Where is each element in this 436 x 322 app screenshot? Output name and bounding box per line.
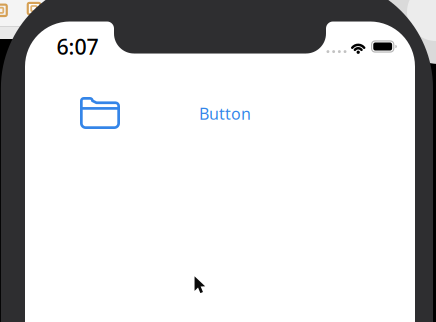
staticText: 6:07	[56, 32, 98, 61]
button[interactable]: Button	[199, 103, 251, 124]
staticText: Button	[199, 103, 251, 124]
button[interactable]: Folder	[80, 97, 120, 129]
